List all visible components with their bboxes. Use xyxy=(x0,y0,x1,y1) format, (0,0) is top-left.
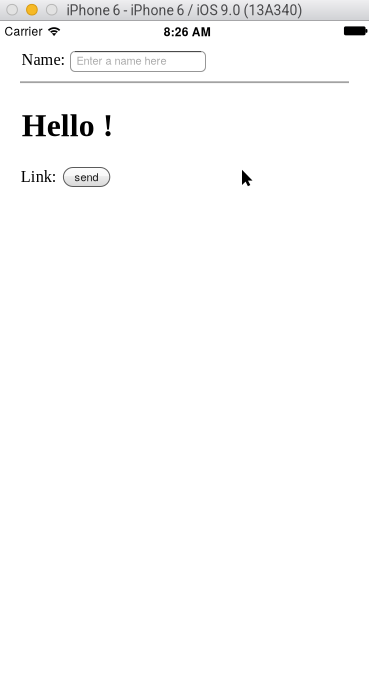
staticText: Hello ! xyxy=(22,108,114,143)
staticText: send xyxy=(75,168,99,184)
staticText: iPhone 6 - iPhone 6 / iOS 9.0 (13A340) xyxy=(66,2,302,19)
staticText: Enter a name here xyxy=(77,52,167,68)
button[interactable]: send xyxy=(63,167,110,187)
staticText: Name: xyxy=(21,50,65,68)
staticText: 8:26 AM xyxy=(164,23,211,40)
staticText: Carrier xyxy=(5,22,43,39)
button[interactable]: Enter a name here xyxy=(70,51,206,72)
button[interactable]: Close xyxy=(0,0,11,11)
staticText: Link: xyxy=(21,167,57,185)
button[interactable]: Zoom xyxy=(0,0,11,11)
button[interactable]: Minimize xyxy=(0,0,11,11)
